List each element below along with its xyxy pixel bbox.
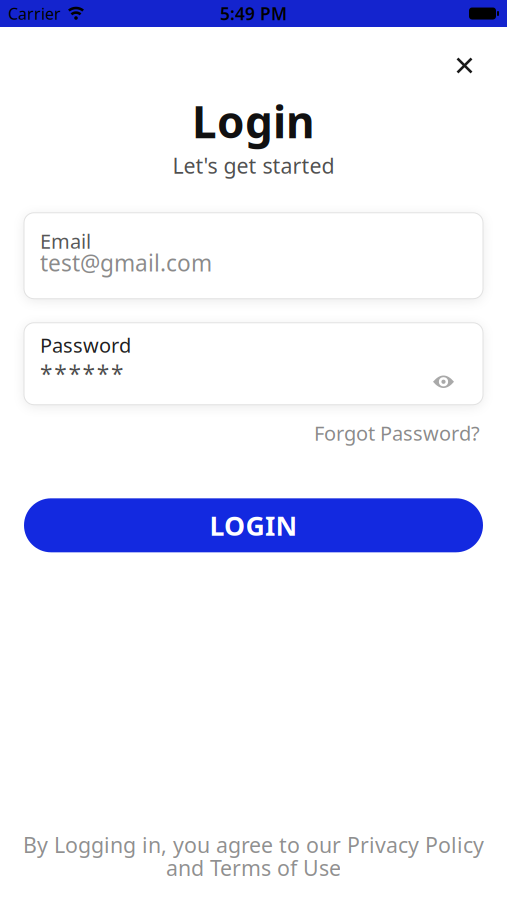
staticText: and Terms of Use [166, 854, 341, 882]
button[interactable]: LOGIN [24, 498, 483, 552]
staticText: * [54, 359, 66, 389]
button[interactable]: Close [448, 49, 481, 82]
button[interactable]: Forgot Password? [314, 420, 480, 446]
staticText: * [83, 359, 95, 389]
staticText: By Logging in, you agree to our Privacy … [23, 831, 484, 859]
staticText: Password [40, 332, 131, 358]
staticText: * [111, 359, 123, 389]
button[interactable]: Show password [427, 369, 460, 395]
staticText: 5:49 PM [220, 2, 287, 25]
staticText: Forgot Password? [314, 420, 480, 446]
staticText: Email [40, 228, 91, 254]
staticText: test@gmail.com [40, 248, 212, 278]
staticText: LOGIN [209, 508, 297, 543]
staticText: Carrier [8, 3, 61, 24]
staticText: * [97, 359, 109, 389]
staticText: Login [192, 92, 315, 150]
button[interactable]: Email, test@gmail.com [24, 213, 483, 299]
staticText: * [40, 359, 52, 389]
staticText: Let's get started [172, 151, 334, 180]
staticText: * [68, 359, 80, 389]
